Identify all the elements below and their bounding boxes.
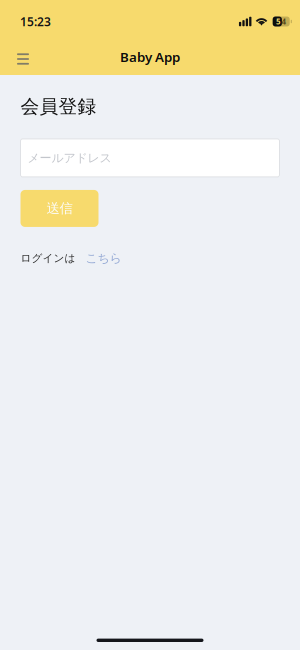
staticText: ログインは — [20, 252, 75, 265]
staticText: 会員登録 — [20, 95, 96, 118]
staticText: 15:23 — [20, 13, 51, 29]
button[interactable]: 送信 — [20, 190, 98, 227]
staticText: 5 — [276, 16, 281, 27]
staticText: Baby App — [120, 48, 180, 66]
button[interactable]: Menu — [8, 45, 38, 73]
staticText: 4 — [281, 16, 286, 27]
staticText: メールアドレス — [27, 151, 111, 165]
staticText: こちら — [85, 251, 121, 266]
button[interactable]: こちら — [85, 251, 121, 266]
staticText: 送信 — [46, 200, 72, 217]
